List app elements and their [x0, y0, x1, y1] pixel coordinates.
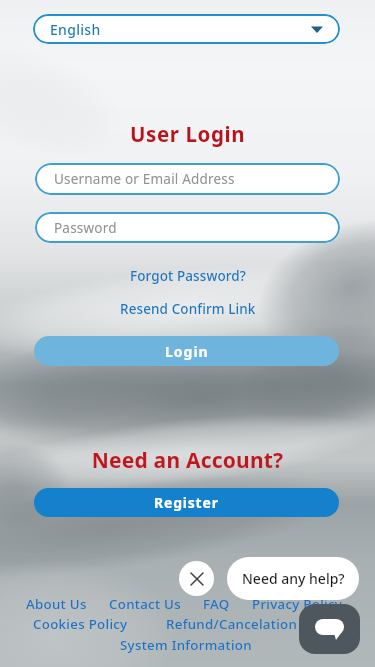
staticText: Need an Account?	[0, 446, 375, 475]
button[interactable]: System Information	[120, 636, 252, 654]
button[interactable]: Resend Confirm Link	[120, 300, 256, 318]
button[interactable]: Privacy Policy	[252, 595, 343, 613]
button[interactable]: FAQ	[203, 595, 230, 613]
staticText: Username or Email Address	[54, 170, 235, 188]
button[interactable]	[179, 561, 214, 596]
staticText: Login	[165, 342, 209, 361]
button[interactable]: Need any help?	[227, 557, 359, 600]
button[interactable]: Register	[34, 488, 339, 517]
button[interactable]: Password	[35, 212, 340, 243]
button[interactable]: Contact Us	[109, 595, 181, 613]
staticText: User Login	[0, 120, 375, 148]
staticText: English	[50, 20, 101, 39]
button[interactable]: About Us	[26, 595, 87, 613]
button[interactable]: Cookies Policy	[33, 615, 128, 633]
staticText: Register	[154, 493, 219, 512]
button[interactable]: English	[33, 14, 340, 44]
button[interactable]	[299, 604, 360, 654]
button[interactable]: Refund/Cancelation	[166, 615, 298, 633]
button[interactable]: Forgot Password?	[130, 267, 246, 285]
staticText: Need any help?	[242, 569, 345, 588]
staticText: Password	[54, 219, 117, 237]
button[interactable]: Username or Email Address	[35, 163, 340, 195]
button[interactable]: Login	[34, 336, 339, 366]
